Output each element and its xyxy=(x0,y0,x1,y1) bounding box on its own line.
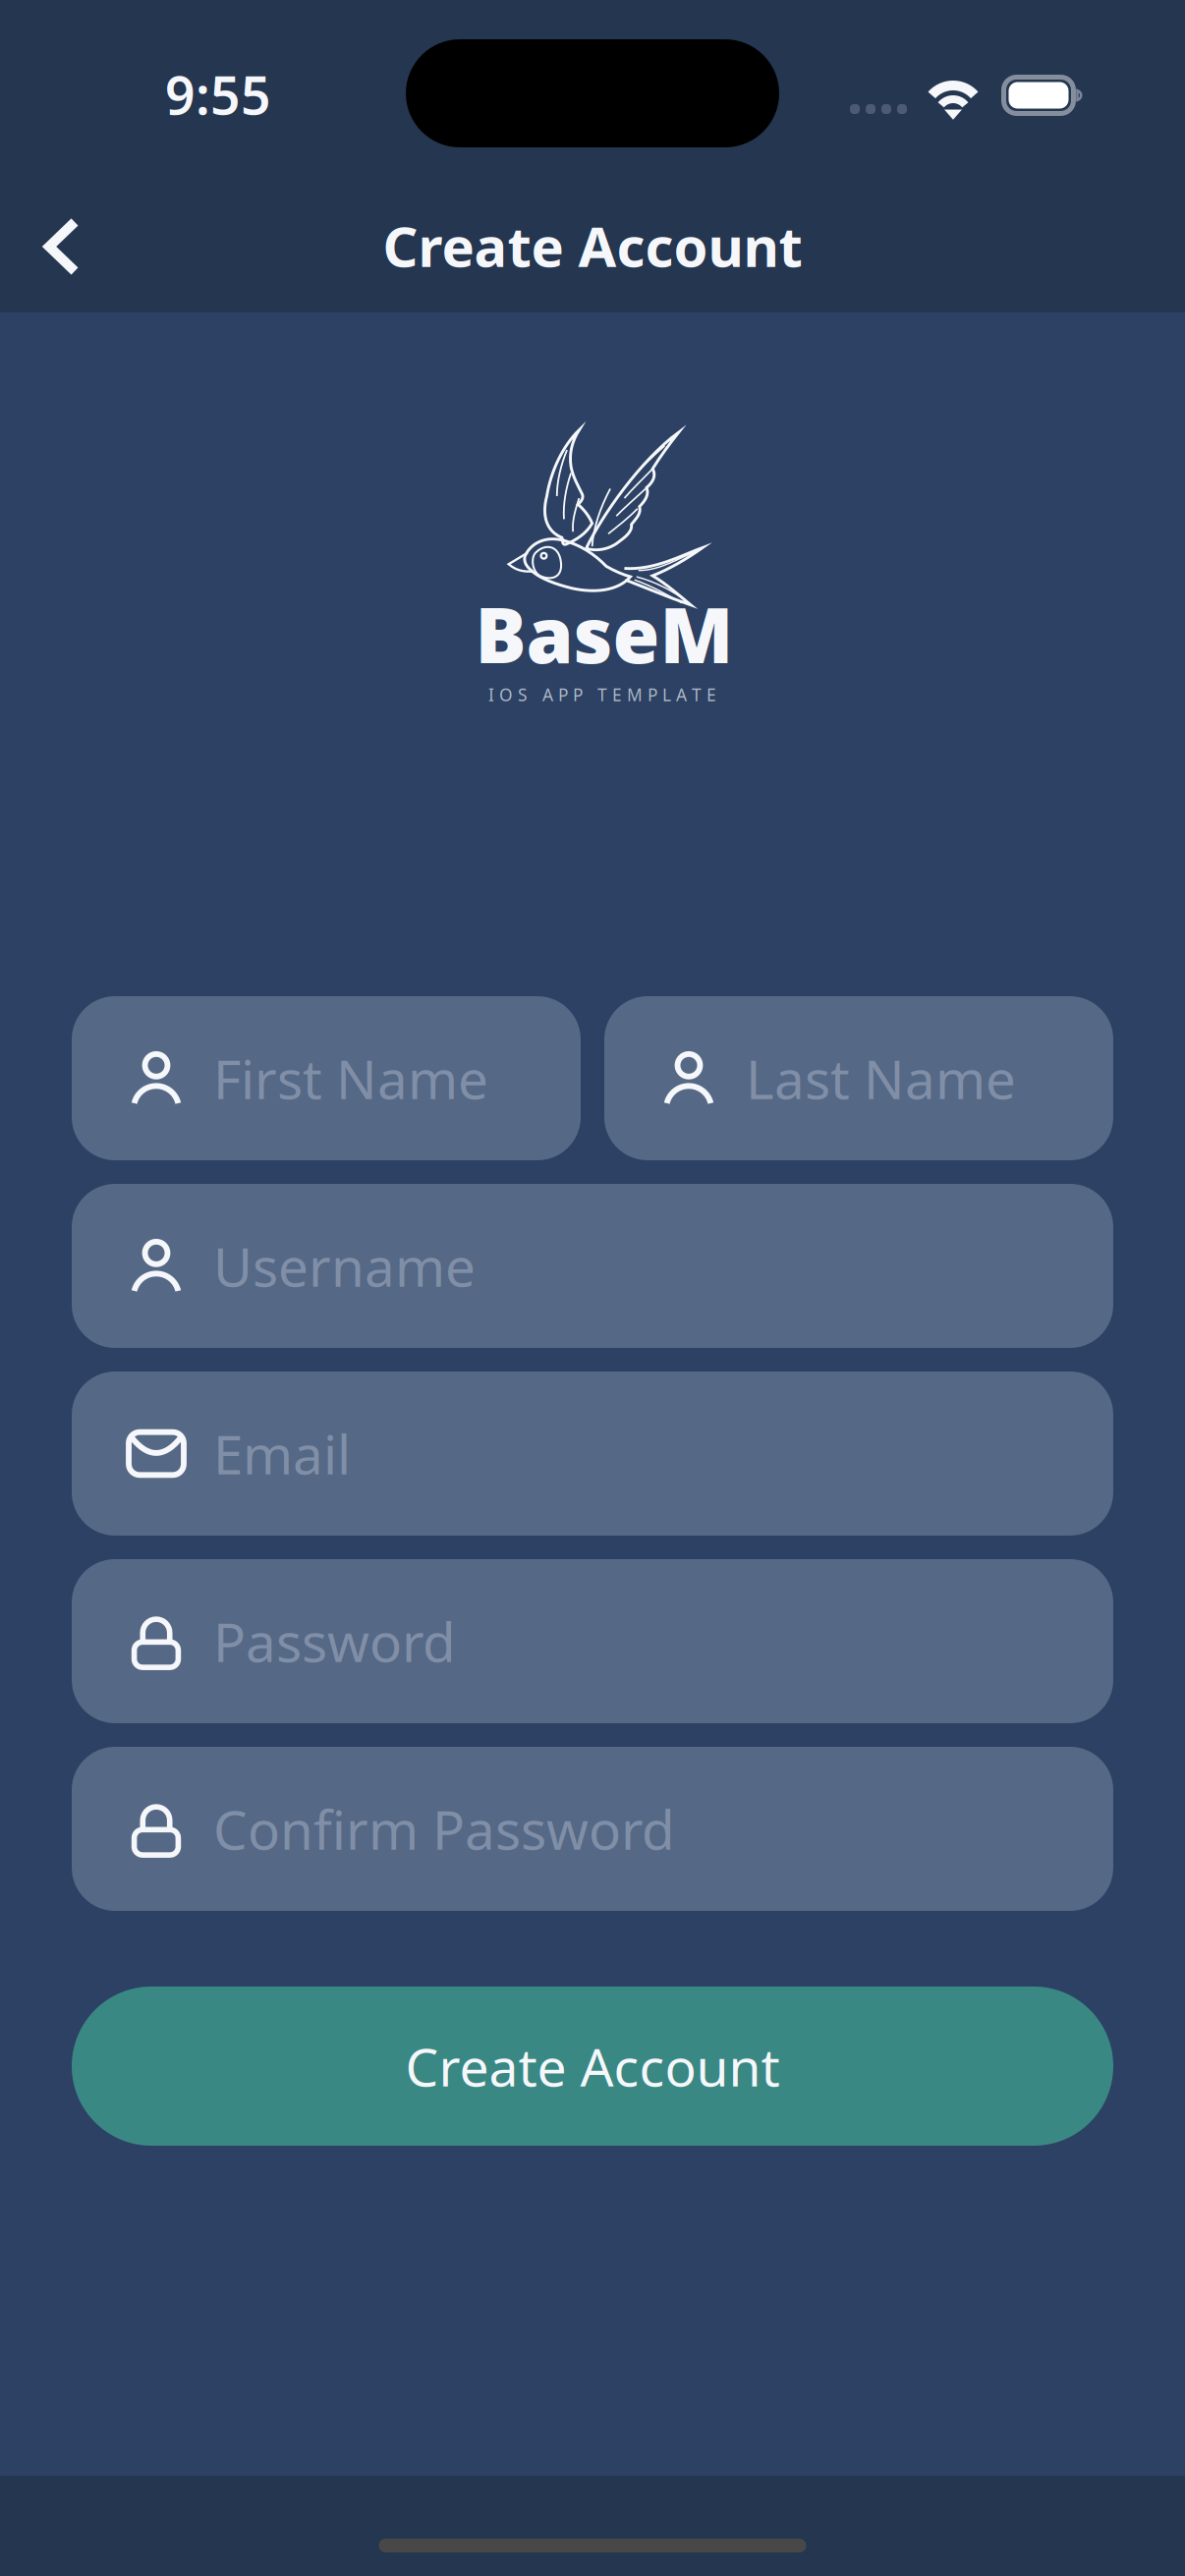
staticText: Create Account xyxy=(383,209,802,282)
staticText: Username xyxy=(213,1230,476,1302)
staticText: Create Account xyxy=(405,2031,780,2101)
staticText: First Name xyxy=(213,1043,488,1114)
button[interactable]: Back xyxy=(0,184,125,309)
button[interactable]: Email xyxy=(72,1372,1113,1536)
staticText: Email xyxy=(213,1418,351,1489)
staticText: Confirm Password xyxy=(213,1793,675,1865)
button[interactable]: Password xyxy=(72,1559,1113,1723)
button[interactable]: Create Account xyxy=(72,1987,1113,2146)
button[interactable]: Confirm Password xyxy=(72,1747,1113,1911)
staticText: Last Name xyxy=(746,1043,1016,1114)
button[interactable]: Username xyxy=(72,1184,1113,1348)
staticText: Password xyxy=(213,1606,456,1677)
staticText: BaseM xyxy=(475,583,734,684)
button[interactable]: Last Name xyxy=(604,996,1113,1160)
button[interactable]: First Name xyxy=(72,996,581,1160)
staticText: 9:55 xyxy=(165,60,271,129)
staticText: I O S A P P T E M P L A T E xyxy=(488,683,716,706)
